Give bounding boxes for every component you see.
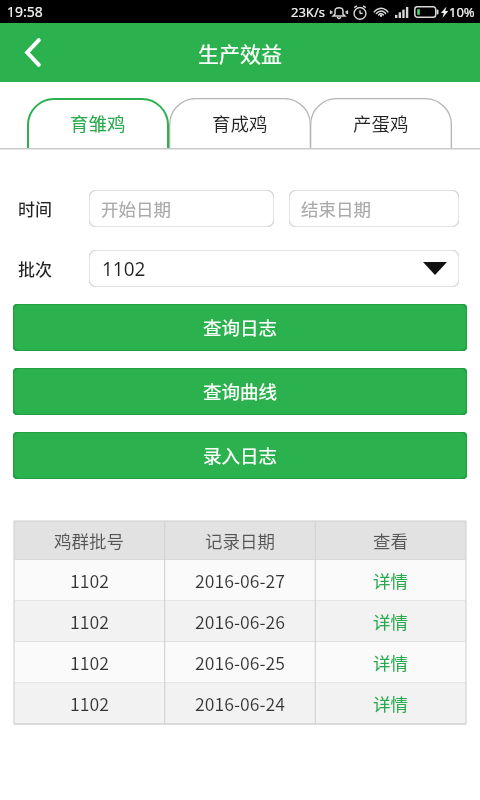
staticText: 查询日志 (203, 314, 278, 341)
staticText: 2016-06-26 (195, 609, 285, 634)
button[interactable]: Back (0, 23, 66, 82)
button[interactable]: 育雏鸡 (27, 98, 169, 148)
staticText: 2016-06-25 (195, 650, 285, 675)
staticText: 1102 (70, 568, 109, 593)
button[interactable]: 录入日志 (13, 432, 467, 479)
staticText: 详情 (373, 691, 408, 716)
button[interactable]: 查询日志 (13, 304, 467, 351)
button[interactable]: 产蛋鸡 (310, 98, 452, 148)
staticText: 录入日志 (203, 442, 278, 469)
staticText: 1102 (70, 609, 109, 634)
button[interactable]: 开始日期 (89, 190, 274, 227)
staticText: 10% (449, 3, 475, 21)
staticText: 详情 (373, 568, 408, 593)
staticText: 批次 (18, 256, 70, 281)
staticText: 鸡群批号 (54, 528, 124, 553)
staticText: 结束日期 (301, 196, 371, 221)
staticText: 1102 (70, 650, 109, 675)
button[interactable]: 查询曲线 (13, 368, 467, 415)
staticText: 记录日期 (205, 528, 275, 553)
staticText: 2016-06-24 (195, 691, 285, 716)
staticText: 时间 (18, 196, 70, 221)
staticText: 1102 (102, 256, 146, 282)
staticText: 查询曲线 (203, 378, 278, 405)
staticText: 产蛋鸡 (353, 110, 409, 137)
staticText: 23K/s (291, 3, 325, 21)
staticText: 生产效益 (198, 38, 282, 68)
staticText: 19:58 (7, 2, 43, 21)
staticText: 查看 (373, 528, 408, 553)
staticText: 详情 (373, 650, 408, 675)
button[interactable]: 育成鸡 (169, 98, 311, 148)
staticText: 开始日期 (101, 196, 171, 221)
button[interactable]: 结束日期 (289, 190, 459, 227)
button[interactable]: 1102 (89, 250, 459, 287)
staticText: 育雏鸡 (70, 110, 126, 137)
staticText: 详情 (373, 609, 408, 634)
staticText: 育成鸡 (212, 110, 268, 137)
staticText: 2016-06-27 (195, 568, 285, 593)
staticText: 1102 (70, 691, 109, 716)
